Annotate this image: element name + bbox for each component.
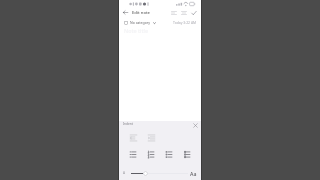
staticText: Indent xyxy=(123,122,133,126)
staticText: No category xyxy=(130,20,151,25)
staticText: Note title xyxy=(124,27,149,34)
button[interactable]: Numbered list xyxy=(146,150,155,159)
staticText: Aa xyxy=(190,170,197,177)
button[interactable]: Close format panel xyxy=(192,122,199,129)
button[interactable]: Save note xyxy=(189,8,198,17)
button[interactable]: Align text xyxy=(169,8,178,17)
button[interactable]: Decrease indent xyxy=(128,133,138,143)
button[interactable]: Center text xyxy=(179,8,188,17)
button[interactable]: Back xyxy=(121,8,130,17)
staticText: Today 3:22 AM xyxy=(173,20,197,25)
staticText: A xyxy=(123,171,126,175)
button[interactable]: Bulleted list xyxy=(164,150,173,159)
staticText: Edit note xyxy=(132,10,150,16)
button[interactable]: No category xyxy=(123,19,157,26)
button[interactable]: Increase indent xyxy=(146,133,156,143)
button[interactable]: Task list xyxy=(182,150,191,159)
button[interactable]: Text size xyxy=(131,170,188,177)
button[interactable]: Checklist xyxy=(128,150,137,159)
